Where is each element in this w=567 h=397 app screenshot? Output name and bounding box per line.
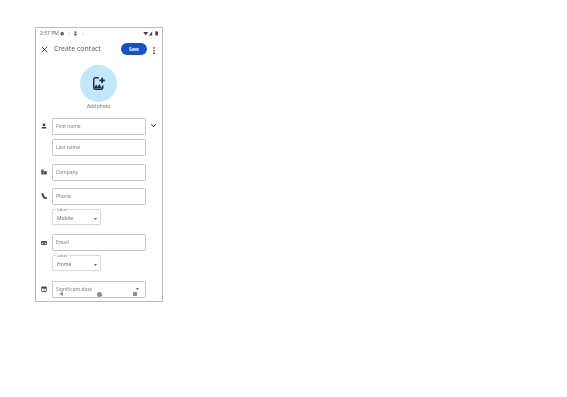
button[interactable]: Recent apps — [127, 286, 143, 302]
staticText: Label — [57, 253, 68, 258]
staticText: Save — [129, 46, 139, 52]
button[interactable]: Significant date — [52, 281, 146, 298]
button[interactable]: Close — [38, 43, 50, 55]
button[interactable]: Email — [52, 234, 146, 251]
button[interactable]: Label — [52, 209, 101, 225]
staticText: Create contact — [54, 44, 101, 53]
button[interactable]: Label — [52, 255, 101, 271]
staticText: Email — [56, 239, 69, 246]
staticText: Home — [57, 261, 72, 268]
staticText: Label — [57, 207, 68, 212]
button[interactable]: Phone — [52, 188, 146, 205]
button[interactable]: Back — [53, 286, 69, 302]
staticText: Last name — [56, 144, 81, 151]
button[interactable]: Company — [52, 164, 146, 181]
button[interactable]: Save — [121, 43, 147, 55]
staticText: 2:57 PM — [40, 30, 59, 37]
staticText: Phone — [56, 193, 71, 200]
button[interactable]: More options — [148, 44, 160, 56]
staticText: Significant date — [56, 286, 92, 293]
button[interactable]: First name — [52, 118, 146, 135]
button[interactable]: Last name — [52, 139, 146, 156]
staticText: Company — [56, 169, 79, 176]
button[interactable]: Home — [91, 286, 107, 302]
staticText: Add photo — [87, 103, 111, 109]
button[interactable]: Add photo — [80, 65, 117, 102]
staticText: First name — [56, 123, 81, 130]
button[interactable]: Expand name fields — [147, 119, 159, 131]
staticText: Mobile — [57, 215, 74, 222]
